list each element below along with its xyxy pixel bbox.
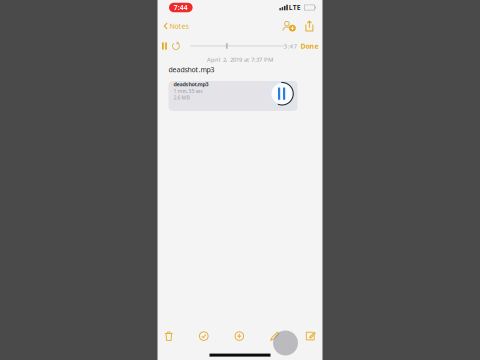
button[interactable]: Done: [297, 39, 319, 53]
staticText: Notes: [169, 21, 188, 31]
staticText: Done: [300, 41, 318, 51]
staticText: 3:47: [283, 42, 297, 50]
button[interactable]: Markup: [266, 327, 284, 345]
button[interactable]: Add attachment: [230, 327, 248, 345]
button[interactable]: Skip back 15 seconds: [169, 40, 183, 52]
button[interactable]: Delete: [160, 327, 177, 345]
button[interactable]: Pause: [160, 40, 169, 52]
staticText: April 2, 2019 at 7:37 PM: [207, 55, 273, 63]
staticText: 2.6 MB: [173, 94, 189, 101]
staticText: 7:44: [174, 3, 188, 12]
button[interactable]: Share: [299, 19, 315, 33]
staticText: deadshot.mp3: [173, 81, 208, 88]
button[interactable]: New note: [301, 327, 319, 345]
button[interactable]: Add People: [279, 18, 299, 34]
staticText: 1 min, 55 sec: [173, 87, 202, 94]
button[interactable]: Pause audio: [270, 82, 294, 106]
staticText: LTE: [289, 3, 301, 12]
staticText: deadshot.mp3: [168, 65, 214, 74]
button[interactable]: Notes: [162, 18, 189, 34]
button[interactable]: Checklist: [195, 327, 213, 345]
